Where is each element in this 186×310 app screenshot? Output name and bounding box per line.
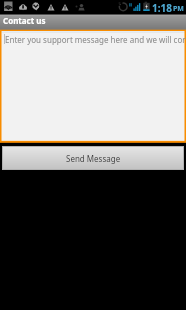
button[interactable]: Send Message (2, 146, 184, 170)
staticText: 1:18 (152, 1, 172, 15)
staticText: Send Message (66, 153, 121, 164)
button[interactable]: Enter you support message here and we wi… (0, 29, 186, 143)
staticText: PM (173, 4, 184, 14)
staticText: Contact us (3, 15, 46, 26)
staticText: Enter you support message here and we wi… (5, 34, 186, 45)
